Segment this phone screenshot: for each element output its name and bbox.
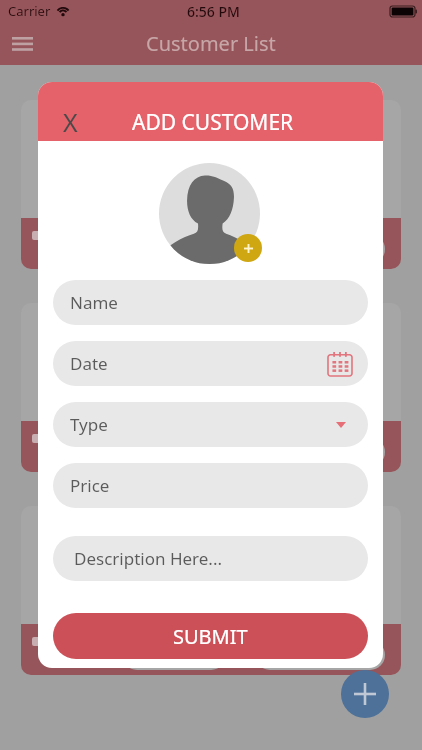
staticText: Type [70, 413, 108, 436]
button[interactable]: Description Here... [53, 536, 368, 581]
staticText: Price [70, 474, 110, 497]
staticText: 6:56 PM [187, 2, 240, 21]
button[interactable]: Price [53, 463, 368, 508]
staticText: SUBMIT [173, 623, 248, 650]
staticText: Description Here... [74, 547, 223, 570]
button[interactable]: Add photo [234, 234, 262, 262]
button[interactable]: Close [54, 105, 86, 137]
button[interactable]: Type [53, 402, 368, 447]
staticText: Customer List [146, 30, 276, 57]
button[interactable]: Add [341, 670, 389, 718]
staticText: X [63, 105, 78, 137]
staticText: ADD CUSTOMER [132, 108, 294, 137]
button[interactable]: Date [53, 341, 368, 386]
staticText: Name [70, 291, 118, 314]
button[interactable]: Menu [6, 27, 39, 60]
button[interactable]: SUBMIT [53, 613, 368, 659]
button[interactable]: Name [53, 280, 368, 325]
staticText: Date [70, 352, 108, 375]
staticText: Carrier [8, 2, 51, 20]
